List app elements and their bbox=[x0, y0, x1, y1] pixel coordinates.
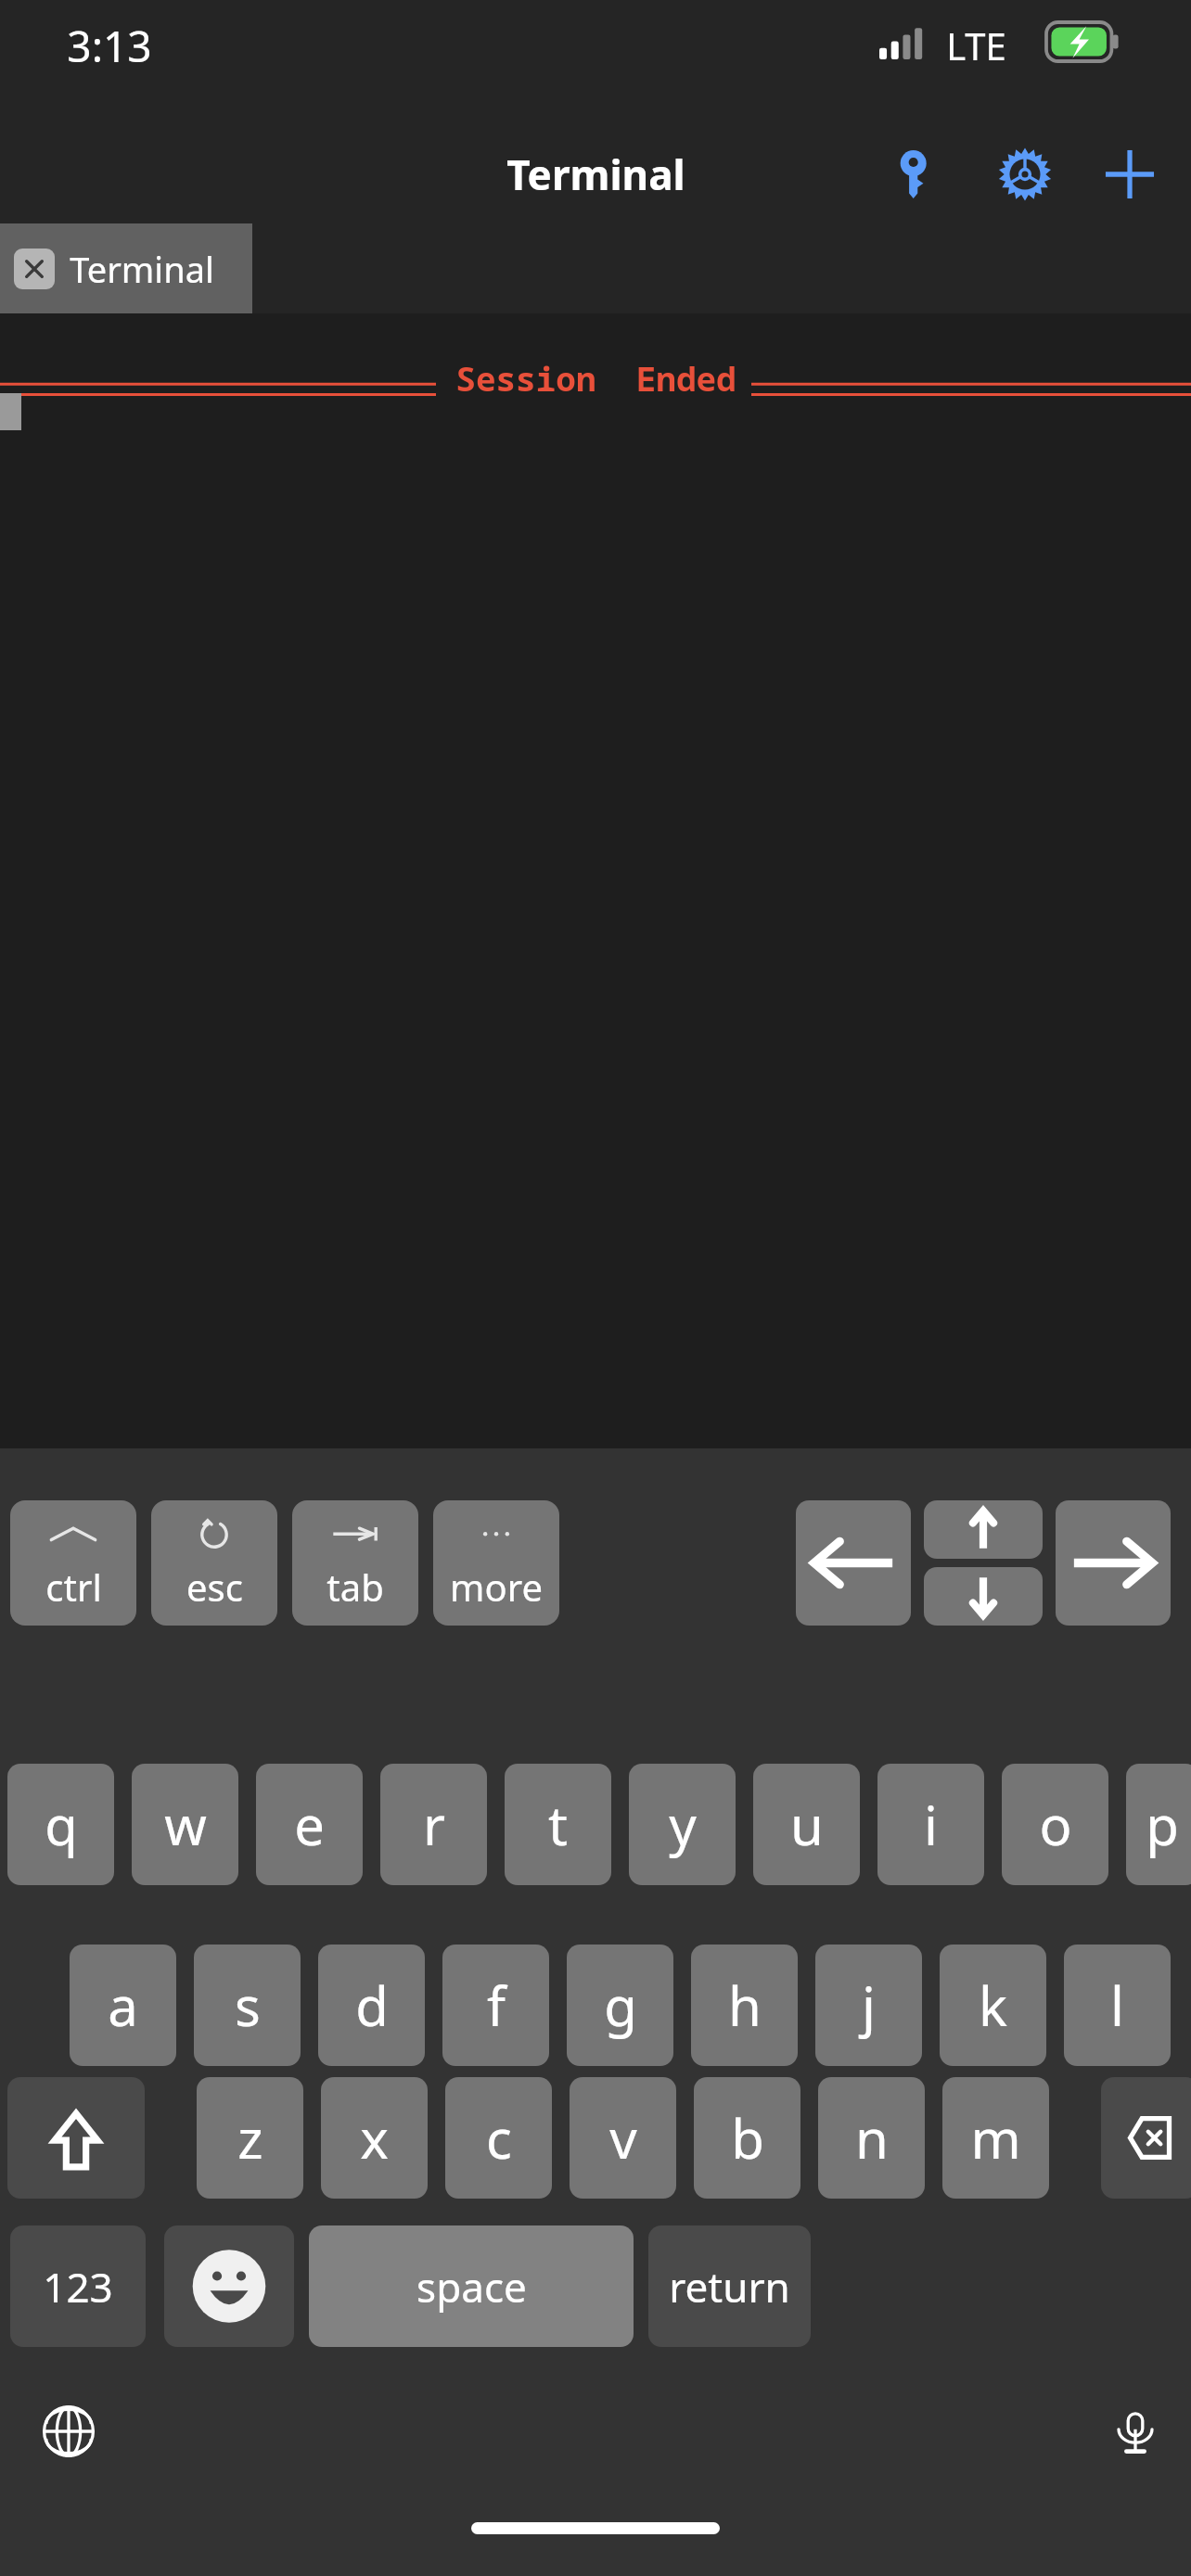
staticText: 3:13 bbox=[67, 17, 152, 70]
button[interactable]: v bbox=[570, 2077, 676, 2199]
staticText: more bbox=[450, 1562, 543, 1612]
staticText: Terminal bbox=[506, 147, 685, 202]
staticText: v bbox=[609, 2101, 637, 2174]
staticText: u bbox=[790, 1788, 824, 1861]
staticText: tab bbox=[327, 1562, 384, 1612]
button[interactable]: q bbox=[7, 1764, 114, 1885]
staticText: 123 bbox=[43, 2259, 113, 2315]
staticText: z bbox=[237, 2101, 263, 2174]
button[interactable]: Close tab bbox=[0, 223, 252, 313]
button[interactable]: Left arrow bbox=[796, 1500, 911, 1626]
staticText: x bbox=[360, 2101, 389, 2174]
button[interactable]: j bbox=[815, 1945, 922, 2066]
button[interactable]: Change keyboard bbox=[33, 2396, 104, 2467]
button[interactable]: Close tab bbox=[14, 249, 55, 289]
button[interactable]: r bbox=[380, 1764, 487, 1885]
staticText: b bbox=[731, 2101, 764, 2174]
staticText: w bbox=[164, 1788, 207, 1861]
staticText: l bbox=[1110, 1969, 1124, 2042]
button[interactable]: return bbox=[648, 2225, 811, 2347]
staticText: s bbox=[235, 1969, 261, 2042]
button[interactable]: ctrl bbox=[10, 1500, 136, 1626]
button[interactable]: more bbox=[433, 1500, 559, 1626]
button[interactable]: l bbox=[1064, 1945, 1171, 2066]
staticText: space bbox=[416, 2259, 527, 2315]
staticText: t bbox=[548, 1788, 568, 1861]
button[interactable]: d bbox=[318, 1945, 425, 2066]
staticText: c bbox=[486, 2101, 512, 2174]
button[interactable]: tab bbox=[292, 1500, 418, 1626]
button[interactable]: Emoji bbox=[164, 2225, 294, 2347]
button[interactable]: Right arrow bbox=[1056, 1500, 1171, 1626]
staticText: o bbox=[1039, 1788, 1072, 1861]
button[interactable]: a bbox=[70, 1945, 176, 2066]
button[interactable]: f bbox=[442, 1945, 549, 2066]
button[interactable]: b bbox=[694, 2077, 800, 2199]
button[interactable]: i bbox=[877, 1764, 984, 1885]
staticText: e bbox=[294, 1788, 325, 1861]
staticText: r bbox=[423, 1788, 445, 1861]
staticText: esc bbox=[186, 1562, 243, 1612]
staticText: m bbox=[970, 2101, 1021, 2174]
staticText: LTE bbox=[946, 20, 1006, 67]
button[interactable]: Down arrow bbox=[924, 1567, 1043, 1626]
staticText: d bbox=[355, 1969, 389, 2042]
button[interactable]: g bbox=[567, 1945, 673, 2066]
button[interactable]: h bbox=[691, 1945, 798, 2066]
staticText: return bbox=[669, 2259, 790, 2315]
staticText: y bbox=[669, 1788, 697, 1861]
staticText: k bbox=[979, 1969, 1007, 2042]
staticText: q bbox=[45, 1788, 78, 1861]
button[interactable]: w bbox=[132, 1764, 238, 1885]
staticText: n bbox=[855, 2101, 889, 2174]
button[interactable]: Keys bbox=[882, 139, 953, 210]
staticText: h bbox=[728, 1969, 762, 2042]
button[interactable]: Backspace bbox=[1101, 2077, 1191, 2199]
staticText: i bbox=[924, 1788, 938, 1861]
button[interactable]: Dictate bbox=[1100, 2396, 1171, 2467]
button[interactable]: 123 bbox=[10, 2225, 146, 2347]
staticText: g bbox=[604, 1969, 637, 2042]
staticText: f bbox=[487, 1969, 506, 2042]
staticText: Session Ended bbox=[455, 356, 736, 402]
button[interactable]: Up arrow bbox=[924, 1500, 1043, 1559]
button[interactable]: e bbox=[256, 1764, 363, 1885]
button[interactable]: z bbox=[197, 2077, 303, 2199]
button[interactable]: Shift bbox=[7, 2077, 145, 2199]
button[interactable]: x bbox=[321, 2077, 428, 2199]
button[interactable]: o bbox=[1002, 1764, 1108, 1885]
staticText: a bbox=[108, 1969, 138, 2042]
staticText: ctrl bbox=[45, 1562, 102, 1612]
button[interactable]: space bbox=[309, 2225, 634, 2347]
button[interactable]: c bbox=[445, 2077, 552, 2199]
button[interactable]: New tab bbox=[1095, 139, 1165, 210]
staticText: p bbox=[1146, 1788, 1179, 1861]
button[interactable]: p bbox=[1126, 1764, 1191, 1885]
button[interactable]: u bbox=[753, 1764, 860, 1885]
button[interactable]: t bbox=[505, 1764, 611, 1885]
button[interactable]: s bbox=[194, 1945, 301, 2066]
button[interactable]: Settings bbox=[990, 139, 1060, 210]
button[interactable]: esc bbox=[151, 1500, 277, 1626]
staticText: Terminal bbox=[70, 245, 214, 293]
button[interactable]: k bbox=[940, 1945, 1046, 2066]
staticText: j bbox=[862, 1969, 876, 2042]
button[interactable]: y bbox=[629, 1764, 736, 1885]
button[interactable]: n bbox=[818, 2077, 925, 2199]
button[interactable]: m bbox=[942, 2077, 1049, 2199]
